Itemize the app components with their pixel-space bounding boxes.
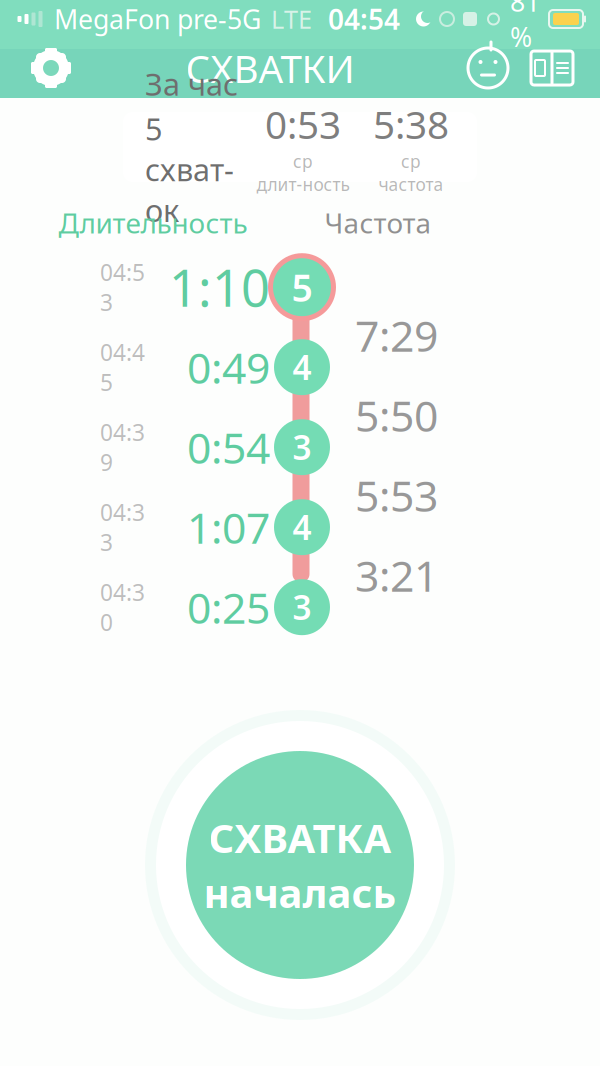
staticText: длит-ность	[256, 173, 349, 196]
staticText: 04:30	[100, 577, 145, 637]
staticText: ср	[293, 150, 313, 173]
staticText: 5 схваток	[145, 108, 234, 230]
staticText: MegaFon pre-5G	[54, 1, 261, 37]
staticText: 1:10	[169, 253, 270, 321]
staticText: СХВАТКА	[208, 811, 391, 864]
staticText: За час	[145, 64, 238, 104]
button[interactable]: Настройки	[24, 41, 78, 95]
staticText: Частота	[324, 204, 431, 241]
staticText: 81 %	[510, 0, 540, 54]
staticText: 04:53	[100, 257, 145, 317]
staticText: 04:33	[100, 497, 145, 557]
button[interactable]: СХВАТКА	[135, 700, 465, 1030]
staticText: 04:39	[100, 417, 145, 477]
staticText: LTE	[271, 2, 312, 36]
staticText: 0:54	[187, 419, 270, 476]
staticText: частота	[378, 173, 443, 196]
staticText: СХВАТКИ	[185, 42, 354, 94]
staticText: началась	[203, 866, 396, 919]
staticText: 5	[291, 262, 312, 312]
button[interactable]: Малыш	[462, 42, 514, 94]
staticText: 7:29	[355, 307, 438, 364]
staticText: ср	[401, 150, 421, 173]
staticText: 0:25	[187, 579, 270, 636]
staticText: 1:07	[187, 499, 270, 556]
staticText: 5:50	[355, 387, 438, 444]
staticText: 0:49	[187, 339, 270, 396]
staticText: 3	[292, 585, 311, 629]
button[interactable]: Справочник	[526, 42, 578, 94]
staticText: 3	[292, 425, 311, 469]
staticText: 5:53	[355, 467, 438, 524]
staticText: 0:53	[265, 98, 341, 150]
staticText: 4	[292, 505, 311, 549]
staticText: 5:38	[373, 98, 449, 150]
staticText: 04:45	[100, 337, 145, 397]
staticText: Длительность	[58, 204, 247, 241]
staticText: 4	[292, 345, 311, 389]
staticText: 04:54	[328, 0, 400, 38]
staticText: 3:21	[355, 547, 438, 604]
